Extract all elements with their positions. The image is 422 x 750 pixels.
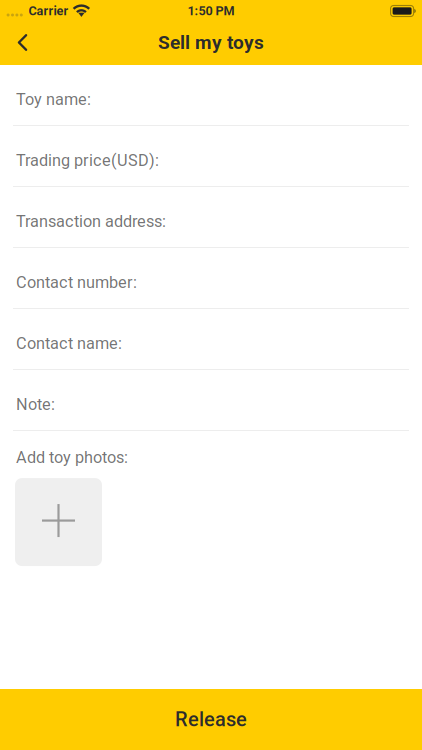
staticText: 1:50 PM bbox=[187, 4, 234, 18]
staticText: Release bbox=[175, 708, 247, 731]
staticText: Carrier bbox=[28, 4, 68, 18]
staticText: Contact number: bbox=[16, 273, 137, 292]
staticText: Contact name: bbox=[16, 334, 122, 353]
button[interactable]: Add toy photo bbox=[15, 478, 102, 566]
button[interactable]: Release bbox=[0, 689, 422, 750]
staticText: Toy name: bbox=[16, 90, 91, 109]
button[interactable]: Back bbox=[0, 20, 45, 65]
staticText: Trading price(USD): bbox=[16, 151, 159, 170]
staticText: Sell my toys bbox=[158, 31, 264, 54]
staticText: Add toy photos: bbox=[16, 448, 128, 467]
staticText: Transaction address: bbox=[16, 212, 166, 231]
staticText: Note: bbox=[16, 395, 55, 414]
